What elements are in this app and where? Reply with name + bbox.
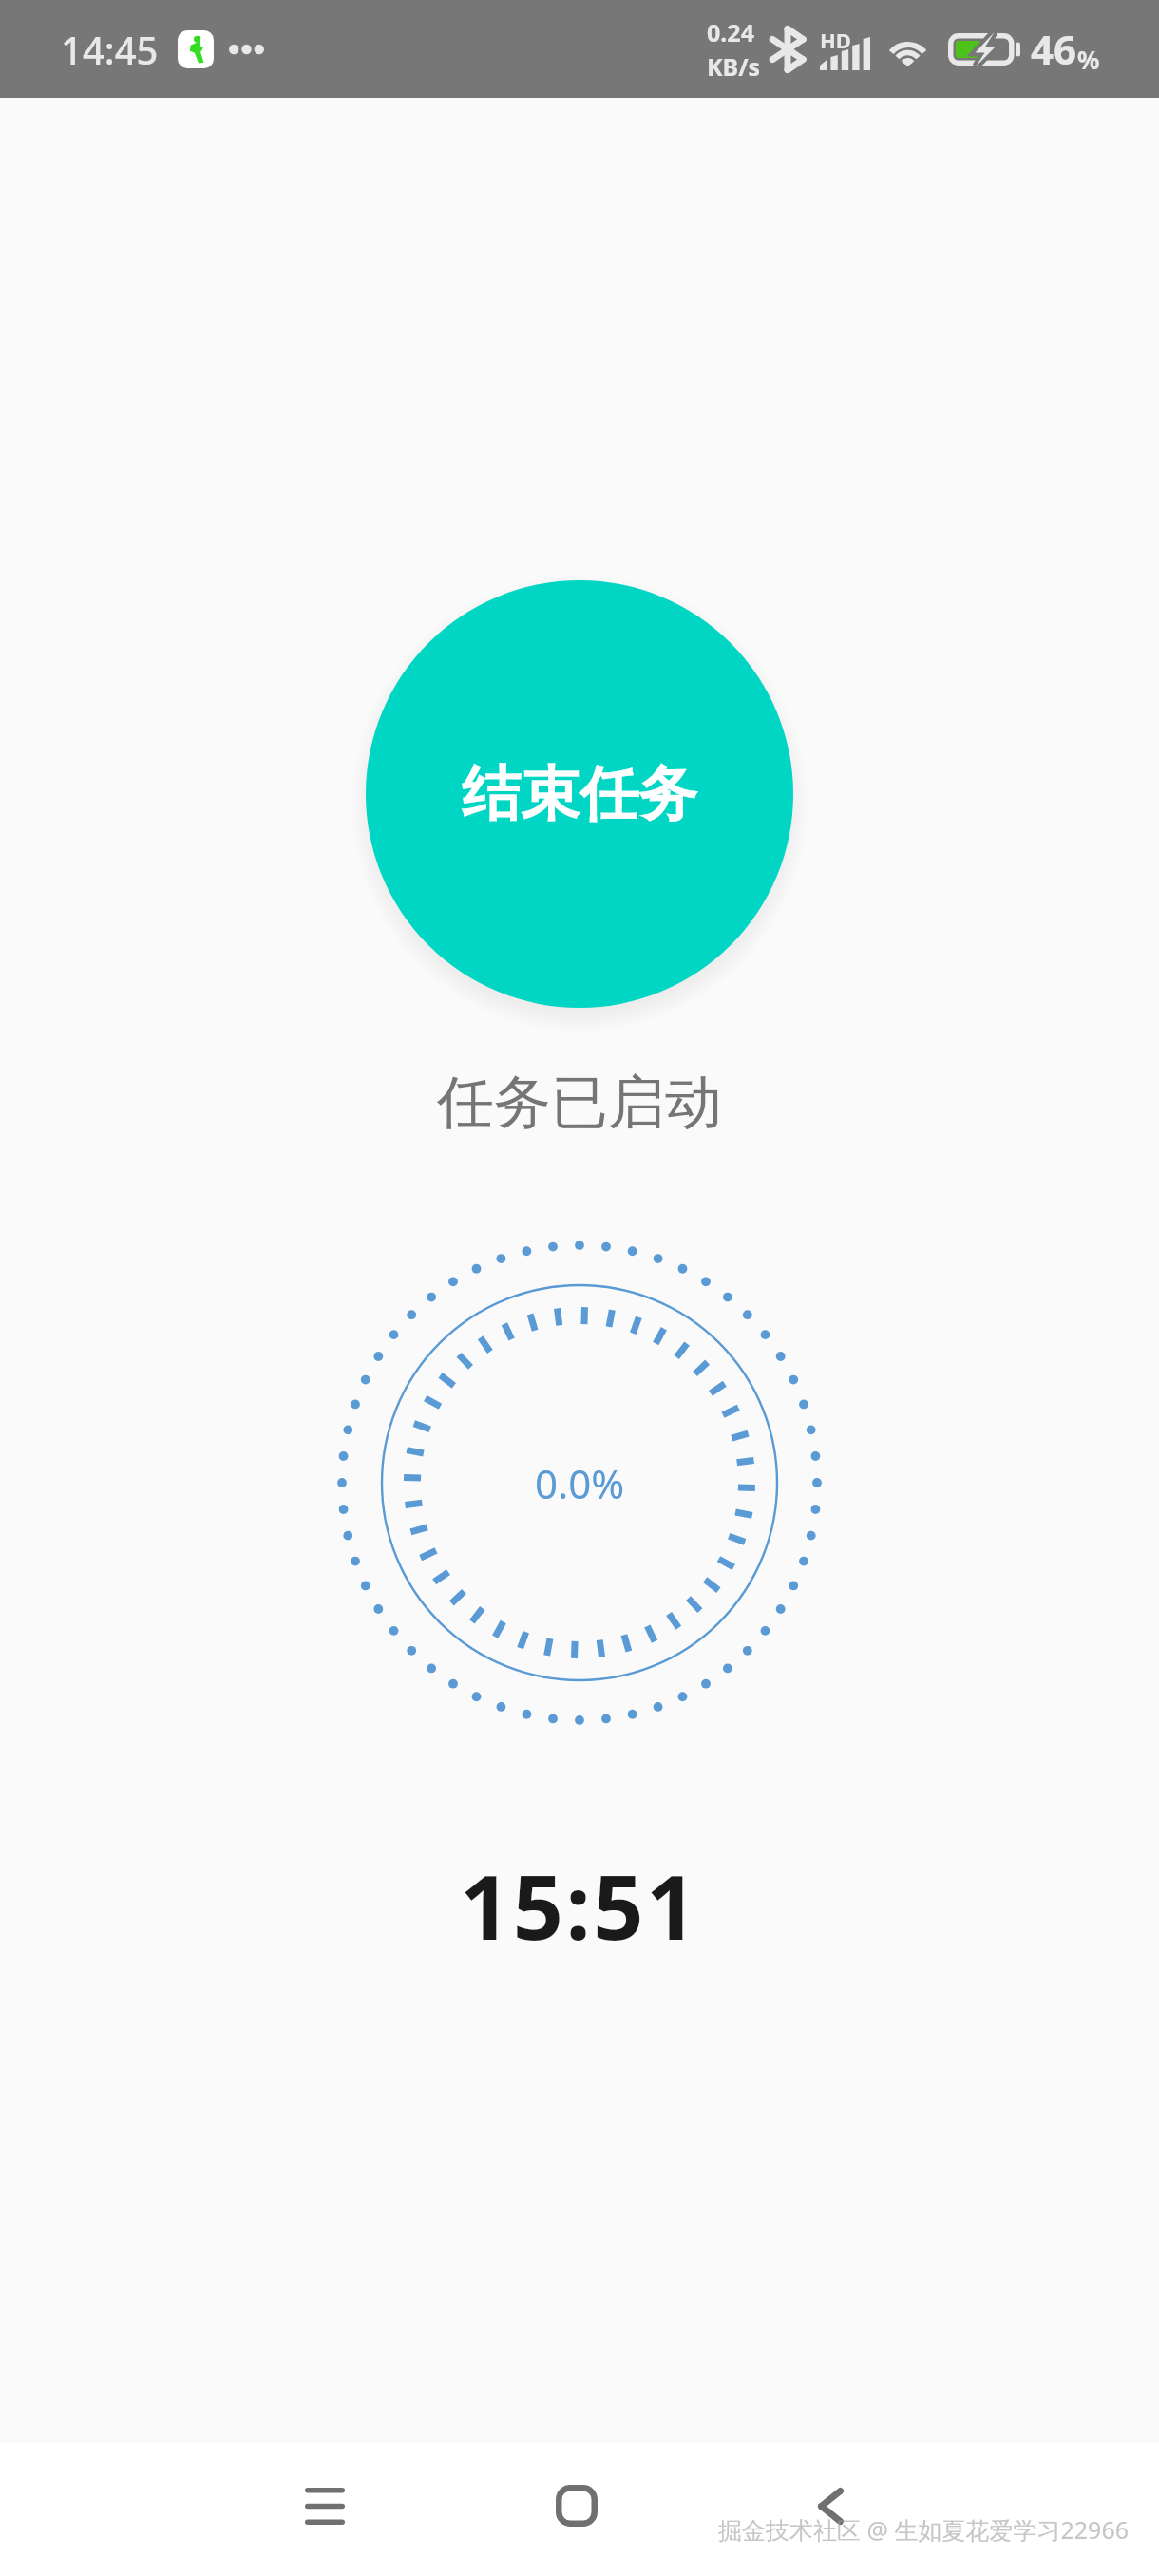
- staticText: %: [1077, 43, 1100, 76]
- staticText: 0.24: [707, 16, 754, 48]
- staticText: 46: [1031, 22, 1077, 76]
- button[interactable]: Recent apps: [249, 2439, 401, 2572]
- button[interactable]: Back: [754, 2439, 906, 2572]
- staticText: 结束任务: [462, 757, 697, 831]
- staticText: 0.0%: [535, 1456, 625, 1510]
- staticText: 任务已启动: [437, 1067, 722, 1139]
- staticText: HD: [820, 26, 851, 54]
- staticText: 掘金技术社区 @ 生如夏花爱学习22966: [718, 2513, 1129, 2546]
- staticText: 15:51: [460, 1846, 699, 1966]
- staticText: KB/s: [707, 50, 761, 83]
- staticText: 14:45: [61, 24, 159, 75]
- button[interactable]: 结束任务: [366, 580, 793, 1008]
- button[interactable]: Home: [501, 2439, 653, 2572]
